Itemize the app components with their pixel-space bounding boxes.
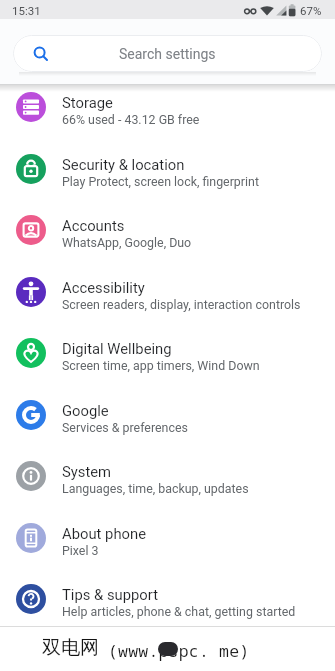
staticText: Accessibility <box>62 279 145 296</box>
staticText: Search settings <box>119 46 216 62</box>
button[interactable]: Digital Wellbeing <box>0 322 335 384</box>
button[interactable]: Google <box>0 384 335 446</box>
button[interactable]: Search settings <box>13 35 322 72</box>
staticText: Screen readers, display, interaction con… <box>62 297 301 312</box>
button[interactable]: Tips & support <box>0 568 335 630</box>
staticText: 15:31 <box>12 4 41 17</box>
button[interactable]: Security & location <box>0 138 335 200</box>
button[interactable]: System <box>0 445 335 507</box>
staticText: Help articles, phone & chat, getting sta… <box>62 604 296 619</box>
staticText: Google <box>62 402 109 419</box>
button[interactable]: Accessibility <box>0 261 335 323</box>
staticText: Tips & support <box>62 586 158 603</box>
staticText: Screen time, app timers, Wind Down <box>62 358 260 373</box>
staticText: About phone <box>62 525 146 542</box>
staticText: WhatsApp, Google, Duo <box>62 235 192 250</box>
staticText: Play Protect, screen lock, fingerprint <box>62 174 259 189</box>
staticText: Security & location <box>62 156 185 173</box>
button[interactable]: Storage <box>0 76 335 138</box>
button[interactable]: About phone <box>0 507 335 569</box>
staticText: Languages, time, backup, updates <box>62 481 249 496</box>
staticText: 67% <box>300 4 322 17</box>
staticText: (www.pspc. me) <box>108 639 250 661</box>
staticText: Pixel 3 <box>62 543 99 558</box>
staticText: 双电网 <box>42 636 99 660</box>
staticText: Services & preferences <box>62 420 188 435</box>
staticText: 66% used - 43.12 GB free <box>62 112 200 127</box>
button[interactable]: Accounts <box>0 199 335 261</box>
staticText: System <box>62 463 112 480</box>
staticText: Accounts <box>62 217 125 234</box>
staticText: Digital Wellbeing <box>62 340 172 357</box>
staticText: Storage <box>62 94 113 111</box>
